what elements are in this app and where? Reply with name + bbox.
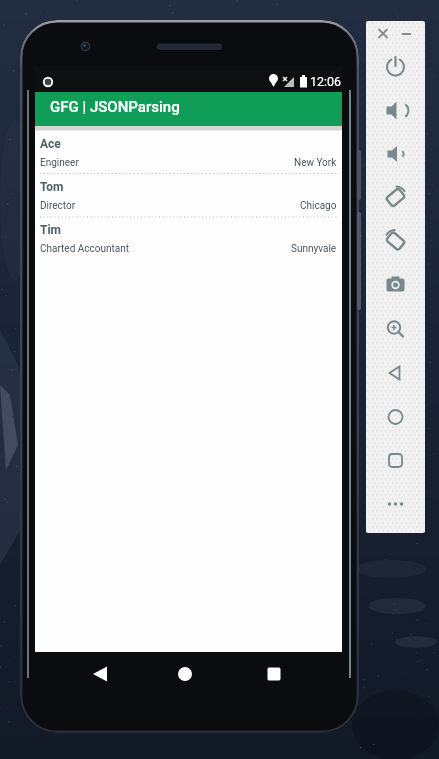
button[interactable] xyxy=(170,660,200,688)
staticText: Director xyxy=(40,200,76,212)
button[interactable] xyxy=(380,448,410,478)
button[interactable] xyxy=(380,492,410,522)
staticText: GFG | JSONParsing xyxy=(50,98,180,116)
staticText: Engineer xyxy=(40,157,79,169)
staticText: Chicago xyxy=(300,200,337,212)
button[interactable] xyxy=(380,228,410,258)
button[interactable] xyxy=(380,96,410,126)
button[interactable]: Tom xyxy=(35,180,342,216)
button[interactable] xyxy=(380,360,410,390)
button[interactable] xyxy=(380,272,410,302)
staticText: Ace xyxy=(40,137,61,151)
button[interactable] xyxy=(375,26,391,42)
button[interactable]: Tim xyxy=(35,223,342,259)
staticText: Sunnyvale xyxy=(291,243,337,255)
button[interactable] xyxy=(252,660,282,688)
staticText: Tim xyxy=(40,223,61,237)
button[interactable]: Ace xyxy=(35,137,342,173)
staticText: 12:06 xyxy=(310,74,342,89)
button[interactable] xyxy=(380,52,410,82)
button[interactable] xyxy=(380,316,410,346)
button[interactable] xyxy=(85,660,115,688)
button[interactable] xyxy=(399,26,415,42)
button[interactable] xyxy=(380,184,410,214)
staticText: Charted Accountant xyxy=(40,243,130,255)
button[interactable] xyxy=(380,404,410,434)
button[interactable]: GFG | JSONParsing xyxy=(35,92,342,126)
button[interactable] xyxy=(380,140,410,170)
staticText: New York xyxy=(294,157,337,169)
staticText: Tom xyxy=(40,180,64,194)
